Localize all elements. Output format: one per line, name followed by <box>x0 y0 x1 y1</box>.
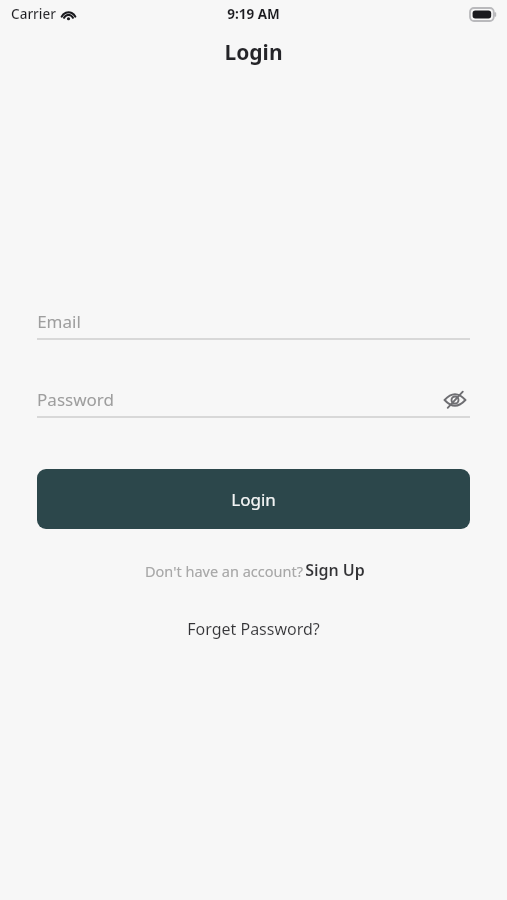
button[interactable]: Email <box>37 305 470 340</box>
staticText: Password <box>37 388 114 411</box>
staticText: Login <box>231 488 276 511</box>
staticText: Forget Password? <box>187 618 320 640</box>
button[interactable]: Forget Password? <box>179 614 328 644</box>
staticText: Carrier <box>11 5 56 23</box>
staticText: Email <box>37 310 81 333</box>
staticText: 9:19 AM <box>227 5 280 23</box>
button[interactable]: Show password <box>440 385 470 415</box>
staticText: Login <box>224 38 283 67</box>
button[interactable]: Don't have an account? <box>37 559 470 581</box>
button[interactable]: Password <box>37 383 470 418</box>
staticText: Sign Up <box>305 559 365 581</box>
button[interactable]: Login <box>37 469 470 529</box>
staticText: Don't have an account? <box>143 561 305 581</box>
